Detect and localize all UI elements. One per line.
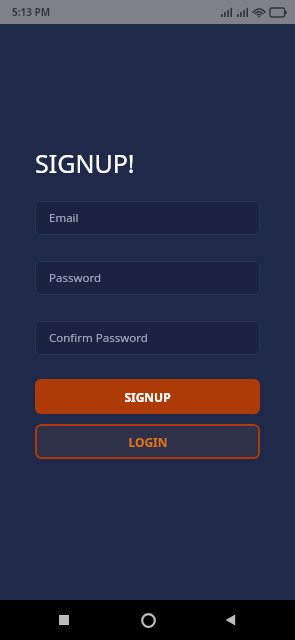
staticText: Email: [49, 210, 79, 226]
staticText: 5:13 PM: [12, 5, 51, 19]
staticText: Confirm Password: [49, 330, 148, 346]
button[interactable]: SIGNUP: [35, 379, 260, 414]
button[interactable]: Back: [211, 600, 251, 640]
button[interactable]: Email: [35, 201, 260, 235]
button[interactable]: Home: [128, 600, 168, 640]
button[interactable]: Password: [35, 261, 260, 295]
staticText: SIGNUP!: [35, 146, 135, 180]
button[interactable]: Recent apps: [44, 600, 84, 640]
button[interactable]: LOGIN: [35, 424, 260, 459]
staticText: SIGNUP: [124, 389, 171, 405]
button[interactable]: Confirm Password: [35, 321, 260, 355]
staticText: Password: [49, 270, 102, 286]
staticText: LOGIN: [128, 434, 168, 450]
